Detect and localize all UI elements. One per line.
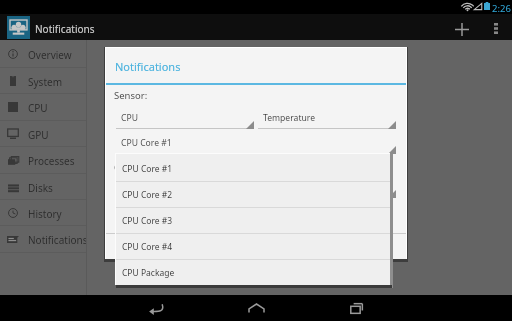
staticText: CPU Package — [122, 267, 175, 279]
staticText: CPU — [28, 101, 48, 115]
staticText: History — [28, 207, 62, 221]
staticText: Temperature — [263, 112, 316, 124]
button[interactable]: CPU Core #1 — [116, 134, 396, 155]
staticText: Disks — [28, 181, 53, 195]
button[interactable]: CPU — [0, 94, 86, 121]
staticText: Above — [121, 181, 147, 193]
button[interactable]: Add — [448, 16, 475, 42]
button[interactable]: CPU Core #2 — [116, 182, 390, 207]
button[interactable]: History — [0, 200, 86, 226]
staticText: Notifications — [35, 22, 95, 36]
staticText: CPU Core #2 — [122, 189, 173, 201]
staticText: Condition: — [114, 161, 160, 174]
staticText: Processes — [28, 154, 75, 168]
button[interactable]: Processes — [0, 147, 86, 174]
staticText: Notifications — [28, 233, 86, 247]
staticText: Notifications — [115, 59, 181, 74]
button[interactable]: Disks — [0, 174, 86, 200]
button[interactable]: Notifications — [0, 16, 95, 39]
staticText: System — [28, 75, 62, 89]
button[interactable]: System — [0, 68, 86, 94]
staticText: Overview — [28, 48, 72, 62]
staticText: CPU Core #1 — [121, 137, 172, 149]
staticText: CPU — [121, 112, 138, 124]
button[interactable]: More options — [484, 15, 508, 41]
staticText: 2:26 — [492, 2, 511, 15]
button[interactable]: Recents — [338, 295, 374, 321]
button[interactable]: CPU Core #4 — [116, 234, 390, 259]
button[interactable]: Home — [238, 295, 274, 321]
button[interactable]: Above — [116, 178, 396, 199]
button[interactable]: Back — [138, 295, 174, 321]
button[interactable]: CPU Core #3 — [116, 208, 390, 233]
button[interactable]: CPU — [116, 109, 254, 130]
button[interactable]: CPU Package — [116, 260, 390, 285]
button[interactable]: Notifications — [0, 226, 86, 253]
button[interactable]: Overview — [0, 41, 86, 68]
staticText: CPU Core #4 — [122, 241, 173, 253]
staticText: CPU Core #3 — [122, 215, 173, 227]
button[interactable]: CPU Core #1 — [116, 154, 390, 181]
staticText: Sensor: — [114, 89, 148, 102]
staticText: CPU Core #1 — [122, 163, 173, 175]
staticText: GPU — [28, 128, 49, 142]
button[interactable]: Temperature — [258, 109, 396, 130]
button[interactable]: GPU — [0, 121, 86, 147]
